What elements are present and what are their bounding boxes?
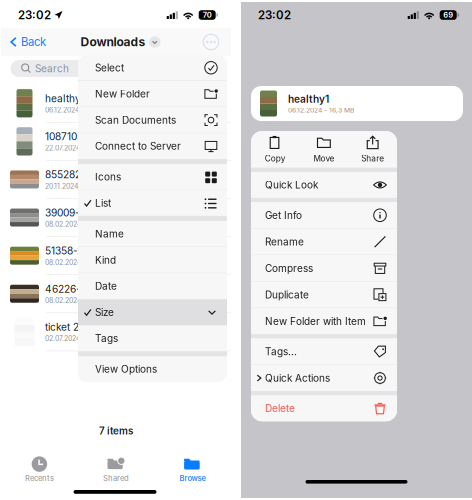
staticText: Tags (95, 332, 118, 344)
button[interactable]: View Options (78, 356, 227, 382)
button[interactable]: Scan Documents (78, 107, 227, 133)
button[interactable]: Tags... (251, 339, 397, 364)
staticText: Date (95, 280, 117, 292)
button[interactable]: Get Info (251, 202, 397, 228)
staticText: 08.02.2024 (45, 258, 81, 267)
staticText: Quick Look (265, 179, 318, 191)
staticText: Scan Documents (95, 114, 176, 126)
button[interactable]: Browse (154, 453, 231, 486)
button[interactable]: Quick Look (251, 172, 397, 198)
staticText: New Folder (95, 88, 150, 100)
staticText: 1087105 (45, 130, 83, 143)
button[interactable]: Delete (251, 395, 397, 421)
button[interactable]: Shared (78, 453, 154, 486)
staticText: Get Info (265, 209, 302, 221)
staticText: 46226-3 (45, 283, 87, 295)
staticText: 23:02 (258, 8, 291, 22)
button[interactable]: Connect to Server (78, 133, 227, 159)
button[interactable]: New Folder (78, 81, 227, 107)
staticText: 51358-2 (45, 245, 83, 257)
staticText: Browse (180, 474, 206, 483)
staticText: Compress (265, 262, 313, 274)
staticText: Duplicate (265, 289, 309, 301)
staticText: Connect to Server (95, 140, 181, 152)
staticText: View Options (95, 363, 157, 375)
button[interactable]: List (78, 190, 227, 216)
staticText: Move (313, 153, 334, 163)
button[interactable]: Search (10, 60, 221, 77)
staticText: List (95, 197, 111, 209)
button[interactable]: ticket 2 (1, 313, 231, 351)
staticText: 8552820 (45, 168, 87, 181)
button[interactable]: Kind (78, 247, 227, 273)
staticText: 70 (203, 10, 212, 19)
button[interactable]: Share (348, 131, 397, 168)
staticText: Quick Actions (265, 372, 330, 384)
button[interactable]: New Folder with Item (251, 308, 397, 334)
staticText: 02.07.2024 (45, 334, 80, 343)
staticText: New Folder with Item (265, 315, 366, 327)
button[interactable]: Icons (78, 164, 227, 190)
staticText: Delete (265, 402, 295, 414)
staticText: Back (21, 35, 46, 49)
staticText: 08.02.2024 (45, 296, 81, 305)
staticText: 20.11.2024 (45, 182, 78, 190)
staticText: Share (361, 153, 384, 163)
button[interactable]: Downloads (80, 28, 160, 56)
button[interactable]: Back (1, 28, 46, 56)
button[interactable]: Move (300, 131, 348, 168)
button[interactable]: Size (78, 300, 227, 325)
staticText: Search (35, 62, 69, 75)
button[interactable]: 51358-2 (1, 237, 231, 275)
staticText: Recents (25, 474, 54, 483)
staticText: Size (95, 306, 114, 318)
button[interactable]: More (195, 28, 227, 56)
button[interactable]: Date (78, 273, 227, 299)
staticText: healthy1 (288, 93, 329, 105)
staticText: 22.07.2024 (45, 144, 80, 152)
button[interactable]: Name (78, 221, 227, 247)
staticText: Rename (265, 236, 304, 248)
button[interactable]: 46226-3 (1, 275, 231, 313)
button[interactable]: 1087105 (1, 123, 231, 161)
button[interactable]: healthy1 (1, 84, 231, 123)
staticText: Name (95, 228, 124, 240)
staticText: Downloads (80, 35, 145, 49)
button[interactable]: Select (78, 55, 227, 81)
button[interactable]: 39009-1 (1, 199, 231, 237)
staticText: Copy (265, 153, 286, 163)
staticText: 7 items (99, 425, 133, 437)
staticText: 06.12.2024 - 16,3 MB (288, 106, 354, 114)
button[interactable]: Copy (251, 131, 300, 168)
staticText: 06.12.2024 (45, 106, 79, 114)
staticText: 69 (443, 10, 453, 19)
button[interactable]: Quick Actions (251, 365, 397, 391)
button[interactable]: 8552820 (1, 161, 231, 199)
staticText: Shared (103, 474, 129, 483)
staticText: ticket 2 (45, 321, 79, 333)
button[interactable]: Tags (78, 326, 227, 351)
staticText: Kind (95, 254, 116, 266)
staticText: 39009-1 (45, 207, 84, 219)
staticText: 23:02 (18, 8, 51, 22)
button[interactable]: Compress (251, 255, 397, 281)
staticText: Select (95, 62, 124, 74)
button[interactable]: Rename (251, 229, 397, 255)
staticText: Tags... (265, 345, 297, 358)
staticText: healthy1 (45, 92, 85, 105)
button[interactable]: Duplicate (251, 282, 397, 308)
staticText: 08.02.2024 (45, 220, 81, 228)
button[interactable]: Recents (1, 453, 78, 486)
staticText: Icons (95, 171, 121, 183)
